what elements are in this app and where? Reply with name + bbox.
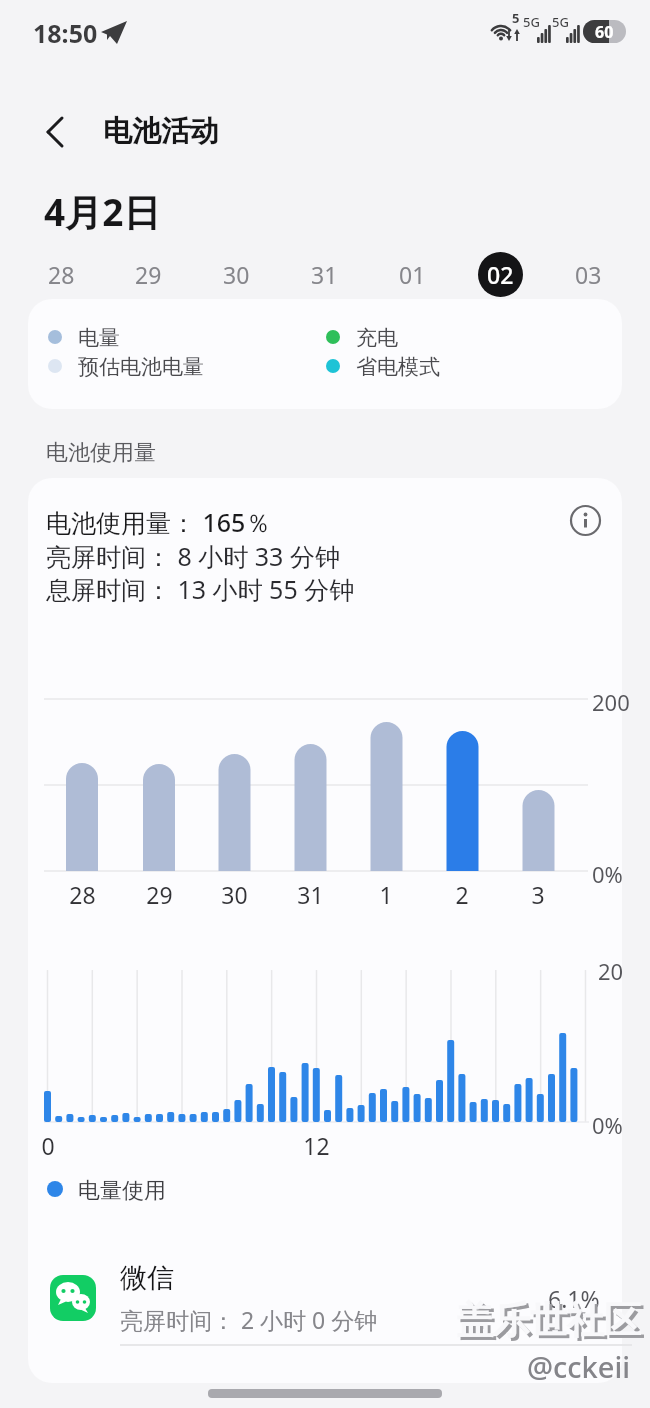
staticText: 0% bbox=[592, 859, 623, 889]
staticText: 1 bbox=[379, 879, 393, 910]
staticText: 电池使用量： 165％ bbox=[46, 505, 271, 539]
staticText: 预估电池电量 bbox=[78, 354, 204, 380]
staticText: 5 bbox=[512, 9, 520, 27]
staticText: 电池使用量 bbox=[46, 439, 156, 467]
staticText: 盖乐世社区 bbox=[459, 1300, 644, 1347]
button[interactable]: 30 bbox=[192, 251, 280, 297]
staticText: 5G bbox=[523, 13, 540, 31]
staticText: 0 bbox=[41, 1130, 55, 1161]
button[interactable]: 微信 bbox=[34, 1250, 616, 1346]
button[interactable] bbox=[569, 504, 602, 537]
staticText: 电量使用 bbox=[78, 1177, 166, 1205]
staticText: 28 bbox=[69, 879, 96, 910]
staticText: 03 bbox=[575, 259, 602, 290]
staticText: 30 bbox=[223, 259, 250, 290]
staticText: 3 bbox=[531, 879, 545, 910]
staticText: 息屏时间： 13 小时 55 分钟 bbox=[46, 572, 355, 606]
staticText: 亮屏时间： 8 小时 33 分钟 bbox=[46, 539, 340, 573]
button[interactable]: 03 bbox=[544, 251, 632, 297]
button[interactable]: 01 bbox=[368, 251, 456, 297]
staticText: 4月2日 bbox=[44, 186, 161, 237]
staticText: 充电 bbox=[356, 325, 398, 351]
staticText: 省电模式 bbox=[356, 354, 440, 380]
button[interactable] bbox=[46, 117, 66, 147]
staticText: 盖乐世社区 bbox=[456, 1297, 641, 1344]
staticText: 6.1% bbox=[548, 1283, 600, 1314]
staticText: 电池活动 bbox=[103, 113, 219, 150]
button[interactable]: 02 bbox=[456, 251, 544, 297]
staticText: 200 bbox=[592, 687, 630, 717]
staticText: 28 bbox=[48, 259, 75, 290]
staticText: 30 bbox=[221, 879, 248, 910]
staticText: 18:50 bbox=[33, 16, 98, 50]
staticText: 29 bbox=[135, 259, 162, 290]
staticText: 60 bbox=[595, 21, 614, 43]
staticText: @cckeii bbox=[527, 1347, 631, 1386]
staticText: 01 bbox=[399, 259, 426, 290]
button[interactable]: 28 bbox=[18, 251, 105, 297]
staticText: 31 bbox=[311, 259, 338, 290]
button[interactable]: 29 bbox=[105, 251, 192, 297]
staticText: 5G bbox=[552, 13, 569, 31]
staticText: 29 bbox=[146, 879, 173, 910]
button[interactable]: 31 bbox=[280, 251, 368, 297]
staticText: 2 bbox=[455, 879, 469, 910]
staticText: 电量 bbox=[78, 325, 120, 351]
staticText: 31 bbox=[297, 879, 324, 910]
staticText: 微信 bbox=[120, 1261, 174, 1295]
staticText: 20 bbox=[598, 956, 624, 986]
staticText: 0% bbox=[592, 1110, 623, 1140]
staticText: 亮屏时间： 2 小时 0 分钟 bbox=[120, 1304, 378, 1335]
staticText: 02 bbox=[487, 259, 514, 290]
staticText: 12 bbox=[303, 1130, 330, 1161]
